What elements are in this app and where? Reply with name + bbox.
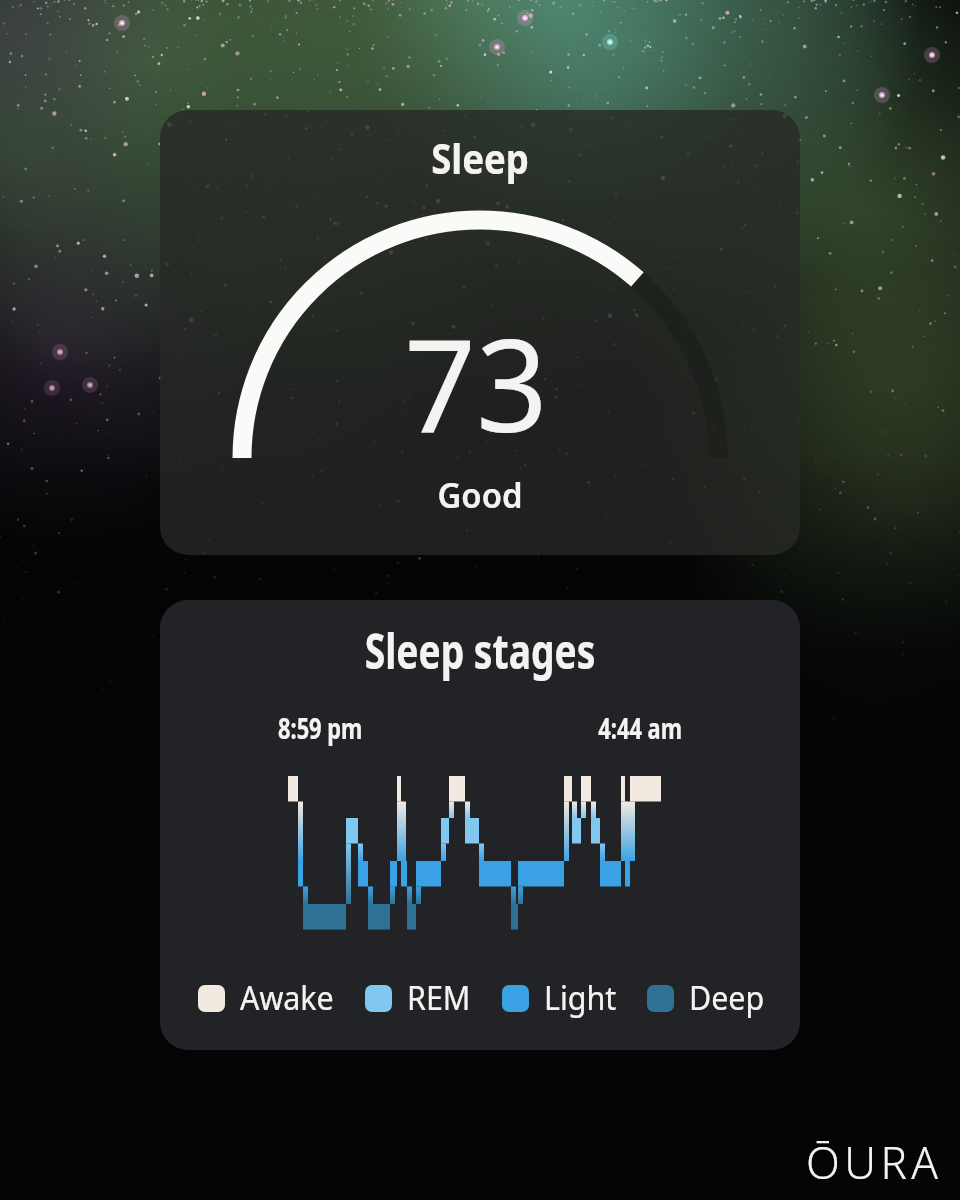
staticText: Awake: [240, 976, 334, 1020]
staticText: Light: [544, 976, 617, 1020]
staticText: Good: [179, 471, 781, 519]
staticText: 73: [162, 295, 790, 469]
button[interactable]: Deep: [647, 976, 769, 1020]
staticText: 8:59 pm: [278, 709, 363, 747]
staticText: ŌURA: [806, 1132, 943, 1192]
staticText: REM: [407, 976, 471, 1020]
button[interactable]: REM: [365, 976, 474, 1020]
staticText: Deep: [689, 976, 765, 1020]
button[interactable]: Sleep stages: [160, 600, 800, 1050]
staticText: Sleep: [202, 129, 758, 186]
staticText: 4:44 am: [275, 709, 682, 747]
button[interactable]: Sleep: [160, 110, 800, 555]
staticText: Sleep stages: [232, 618, 728, 683]
button[interactable]: Light: [502, 976, 621, 1020]
button[interactable]: Awake: [198, 976, 339, 1020]
